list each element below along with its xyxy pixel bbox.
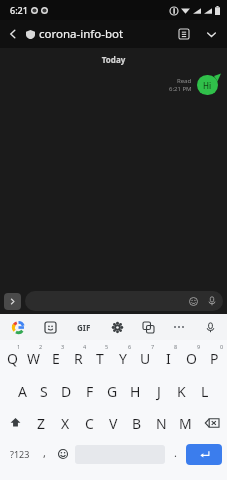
button[interactable]: More <box>169 317 189 337</box>
staticText: 1 <box>17 343 21 350</box>
staticText: ?123 <box>10 448 30 460</box>
button[interactable]: F <box>78 373 101 406</box>
staticText: N <box>156 414 167 433</box>
staticText: corona-info-bot <box>39 26 124 42</box>
button[interactable]: S <box>33 373 55 406</box>
staticText: , <box>43 445 46 460</box>
button[interactable]: 2 <box>23 340 45 373</box>
button[interactable]: More options <box>197 20 225 48</box>
button[interactable]: Back <box>0 21 26 47</box>
staticText: R <box>74 349 83 368</box>
staticText: 6:21 <box>10 4 28 16</box>
button[interactable]: 9 <box>180 340 203 373</box>
staticText: 8 <box>174 343 178 350</box>
button[interactable]: 5 <box>89 340 111 373</box>
button[interactable]: Google search <box>8 317 28 337</box>
staticText: U <box>140 349 151 368</box>
button[interactable]: H <box>124 373 147 406</box>
button[interactable]: C <box>77 406 101 439</box>
button[interactable]: Voice message <box>202 291 222 311</box>
button[interactable]: Hi <box>196 73 221 97</box>
button[interactable]: Settings <box>107 317 127 337</box>
button[interactable]: M <box>173 406 197 439</box>
staticText: G <box>107 382 118 401</box>
button[interactable]: . <box>167 439 184 469</box>
button[interactable]: Emoji <box>184 292 202 310</box>
staticText: J <box>157 382 161 401</box>
staticText: F <box>86 382 94 401</box>
staticText: M <box>179 414 192 433</box>
button[interactable]: L <box>193 373 216 406</box>
staticText: A <box>18 382 27 401</box>
staticText: GIF <box>77 322 91 333</box>
button[interactable]: Emoji <box>53 439 73 469</box>
staticText: Z <box>37 414 46 433</box>
button[interactable]: Notes <box>171 21 197 47</box>
button[interactable]: 8 <box>157 340 180 373</box>
staticText: C <box>85 414 94 433</box>
button[interactable]: 3 <box>45 340 67 373</box>
staticText: S <box>40 382 48 401</box>
staticText: 2 <box>39 343 43 350</box>
button[interactable]: Shift <box>1 406 29 439</box>
staticText: B <box>132 414 142 433</box>
staticText: 9 <box>197 343 201 350</box>
staticText: V <box>109 414 118 433</box>
staticText: 0 <box>220 343 224 350</box>
button[interactable]: Translate <box>138 317 158 337</box>
staticText: Read <box>177 77 192 85</box>
staticText: 6 <box>128 343 132 350</box>
button[interactable]: 0 <box>203 340 226 373</box>
staticText: E <box>52 349 60 368</box>
staticText: O <box>186 349 197 368</box>
staticText: Y <box>119 349 127 368</box>
button[interactable]: GIF <box>72 315 96 339</box>
staticText: L <box>201 382 209 401</box>
button[interactable]: A <box>11 373 33 406</box>
staticText: 6:21 PM <box>169 85 192 93</box>
staticText: I <box>166 349 171 368</box>
staticText: H <box>130 382 141 401</box>
staticText: 5 <box>105 343 109 350</box>
staticText: P <box>210 349 219 368</box>
staticText: W <box>27 349 41 368</box>
button[interactable]: 6 <box>111 340 134 373</box>
staticText: Today <box>0 54 227 65</box>
button[interactable]: 7 <box>134 340 157 373</box>
staticText: T <box>96 349 104 368</box>
staticText: . <box>174 445 177 460</box>
button[interactable]: V <box>101 406 125 439</box>
button[interactable]: 1 <box>1 340 23 373</box>
button[interactable]: 4 <box>67 340 89 373</box>
staticText: 3 <box>61 343 65 350</box>
button[interactable]: D <box>55 373 78 406</box>
button[interactable]: Backspace <box>197 406 226 439</box>
button[interactable]: , <box>36 439 53 469</box>
staticText: D <box>61 382 72 401</box>
staticText: 7 <box>151 343 155 350</box>
button[interactable]: Expand <box>4 293 21 310</box>
button[interactable]: G <box>101 373 124 406</box>
button[interactable]: Voice input <box>200 317 220 337</box>
button[interactable]: Z <box>29 406 53 439</box>
button[interactable]: B <box>125 406 149 439</box>
button[interactable]: Emoji <box>25 291 223 311</box>
button[interactable]: Stickers <box>40 317 60 337</box>
button[interactable]: X <box>53 406 77 439</box>
button[interactable]: N <box>149 406 173 439</box>
button[interactable]: K <box>170 373 193 406</box>
button[interactable]: J <box>147 373 170 406</box>
staticText: 4 <box>83 343 87 350</box>
staticText: X <box>61 414 70 433</box>
staticText: K <box>177 382 186 401</box>
button[interactable]: ?123 <box>3 439 36 469</box>
button[interactable]: Enter <box>186 444 222 465</box>
staticText: Hi <box>203 80 212 91</box>
staticText: Q <box>7 349 18 368</box>
